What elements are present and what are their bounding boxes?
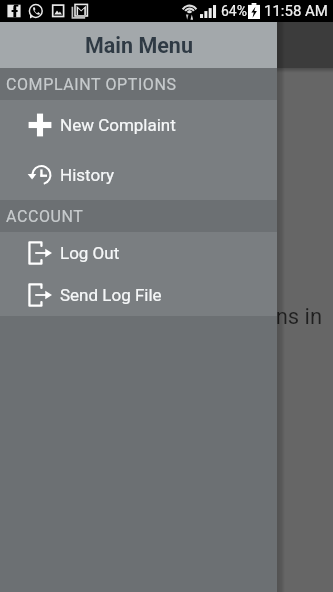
staticText: ACCOUNT (6, 207, 84, 226)
staticText: COMPLAINT OPTIONS (6, 75, 177, 94)
button[interactable]: Close navigation drawer (277, 0, 333, 592)
staticText: Main Menu (85, 33, 193, 58)
staticText: History (60, 165, 115, 185)
staticText: Log Out (60, 243, 120, 263)
staticText: 11:58 AM (264, 2, 328, 20)
staticText: Send Log File (60, 285, 162, 305)
button[interactable]: Send Log File (0, 274, 277, 316)
staticText: 64% (221, 3, 247, 19)
button[interactable]: New Complaint (0, 100, 277, 150)
staticText: New Complaint (60, 115, 176, 135)
button[interactable]: Log Out (0, 232, 277, 274)
staticText: You have no new inspections in progress (16, 304, 333, 330)
button[interactable]: History (0, 150, 277, 200)
